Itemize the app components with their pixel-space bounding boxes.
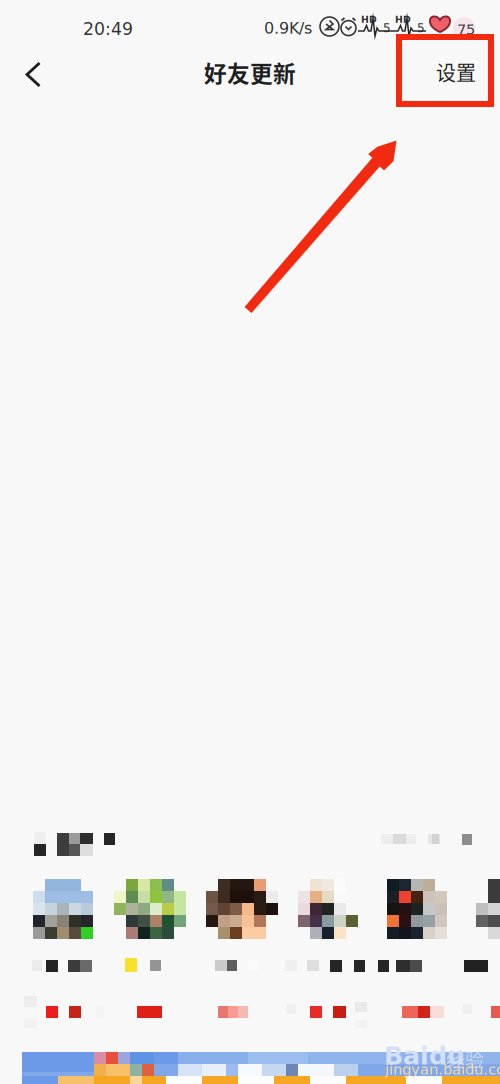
staticText: 5 xyxy=(417,21,425,35)
staticText: 设置 xyxy=(436,57,476,86)
staticText: 5 xyxy=(383,21,391,35)
staticText: 好友更新 xyxy=(204,56,296,89)
staticText: 75 xyxy=(457,21,475,38)
button[interactable]: Back xyxy=(18,49,70,101)
staticText: Baidu xyxy=(384,1041,465,1070)
staticText: jingyan.baidu.com xyxy=(385,1061,500,1078)
staticText: HD xyxy=(395,14,411,25)
staticText: 20:49 xyxy=(83,19,133,39)
staticText: 经验 xyxy=(446,1045,484,1072)
button[interactable]: 设置 xyxy=(426,50,486,94)
staticText: 0.9K/s xyxy=(264,19,312,38)
staticText: HD xyxy=(361,14,377,25)
